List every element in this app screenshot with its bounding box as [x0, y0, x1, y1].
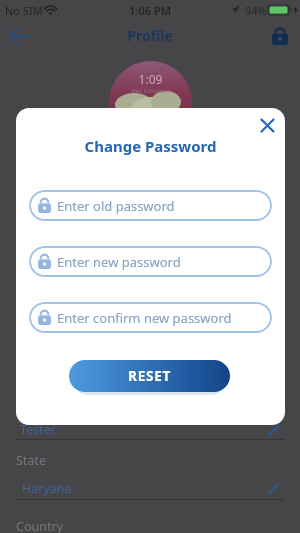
staticText: RESET — [128, 367, 172, 385]
staticText: Enter confirm new password — [57, 309, 232, 327]
button[interactable] — [254, 112, 280, 138]
staticText: 1:09 — [109, 71, 192, 87]
button[interactable]: RESET — [69, 360, 230, 392]
button[interactable] — [4, 22, 34, 50]
staticText: Tester — [20, 421, 56, 438]
staticText: Profile — [0, 26, 300, 45]
staticText: Change Password — [16, 136, 285, 156]
staticText: No SIM — [5, 3, 43, 18]
staticText: 1:06 PM — [0, 3, 300, 18]
staticText: Haryana — [22, 480, 72, 497]
button[interactable]: Enter new password — [29, 246, 272, 277]
staticText: Country — [16, 518, 63, 533]
staticText: Wed, 8 November — [109, 88, 192, 94]
button[interactable]: Enter old password — [29, 190, 272, 221]
staticText: Enter old password — [57, 197, 175, 215]
button[interactable] — [266, 22, 294, 50]
staticText: Enter new password — [57, 253, 181, 271]
button[interactable]: Enter confirm new password — [29, 302, 272, 333]
staticText: State — [16, 452, 46, 469]
staticText: 94% — [245, 3, 267, 18]
